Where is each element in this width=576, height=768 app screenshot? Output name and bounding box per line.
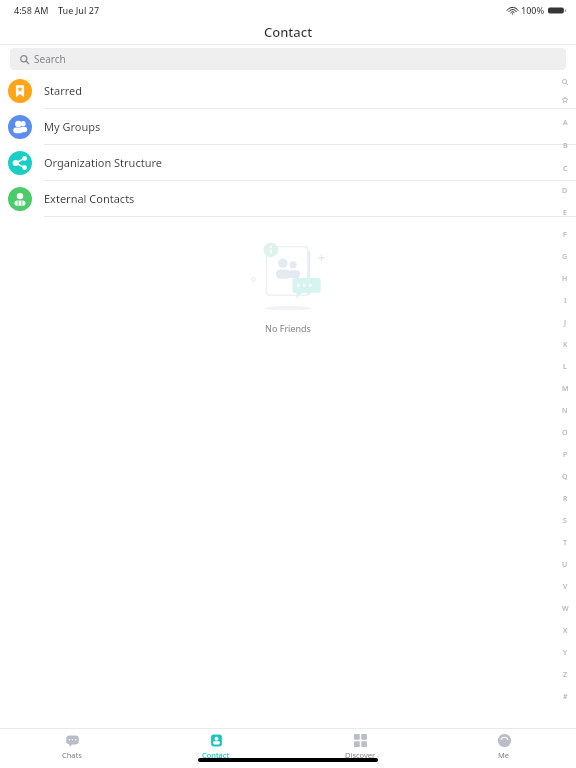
button[interactable]: J [554,312,576,334]
staticText: U [562,560,568,570]
staticText: L [563,362,567,372]
staticText: Tue Jul 27 [58,4,100,16]
button[interactable]: W [554,598,576,620]
staticText: M [562,384,569,394]
staticText: J [564,318,567,328]
staticText: N [562,406,568,416]
button[interactable]: K [554,334,576,356]
button[interactable]: My Groups [0,109,576,145]
button[interactable]: I [554,290,576,312]
staticText: My Groups [44,119,101,134]
staticText: Search [34,52,66,66]
button[interactable]: L [554,356,576,378]
button[interactable]: # [554,686,576,708]
staticText: 100% [521,4,545,16]
button[interactable]: F [554,224,576,246]
staticText: # [563,692,568,702]
staticText: Z [563,670,568,680]
button[interactable]: P [554,444,576,466]
button[interactable]: M [554,378,576,400]
button[interactable]: C [554,157,576,180]
staticText: Starred [44,83,83,98]
staticText: No Friends [265,322,311,334]
staticText: I [564,296,567,306]
staticText: E [563,208,567,218]
button[interactable]: Organization Structure [0,145,576,181]
staticText: S [563,516,567,526]
staticText: K [563,340,568,350]
button[interactable]: Search [10,48,566,70]
staticText: B [563,141,568,151]
staticText: H [562,274,568,284]
staticText: Contact [264,23,313,41]
staticText: X [563,626,568,636]
staticText: R [563,494,568,504]
button[interactable]: External Contacts [0,181,576,217]
staticText: V [563,582,568,592]
button[interactable]: Discover [288,728,432,768]
button[interactable]: O [554,422,576,444]
button[interactable]: Contact [144,728,288,768]
button[interactable]: U [554,554,576,576]
staticText: External Contacts [44,191,135,206]
button[interactable]: Starred [0,73,576,109]
staticText: D [562,186,568,196]
button[interactable]: Search index [554,75,576,89]
button[interactable]: X [554,620,576,642]
button[interactable]: Starred index [554,89,576,111]
staticText: F [563,230,567,240]
button[interactable]: G [554,246,576,268]
button[interactable]: E [554,202,576,224]
staticText: Y [563,648,568,658]
button[interactable]: N [554,400,576,422]
staticText: Contact [202,750,230,760]
button[interactable]: Me [432,728,576,768]
button[interactable]: T [554,532,576,554]
staticText: C [563,164,568,174]
staticText: Chats [62,750,82,760]
staticText: P [563,450,568,460]
staticText: Discover [345,750,376,760]
button[interactable]: D [554,180,576,202]
button[interactable]: R [554,488,576,510]
button[interactable]: Chats [0,728,144,768]
button[interactable]: S [554,510,576,532]
staticText: Me [498,750,510,760]
button[interactable]: Y [554,642,576,664]
staticText: O [562,428,568,438]
staticText: Organization Structure [44,155,162,170]
button[interactable]: B [554,134,576,157]
button[interactable]: Q [554,466,576,488]
staticText: G [562,252,568,262]
staticText: Q [562,472,568,482]
staticText: 4:58 AM [14,4,49,16]
button[interactable]: Z [554,664,576,686]
staticText: A [563,118,568,128]
staticText: T [563,538,567,548]
button[interactable]: A [554,111,576,134]
staticText: W [562,604,569,614]
button[interactable]: H [554,268,576,290]
button[interactable]: V [554,576,576,598]
